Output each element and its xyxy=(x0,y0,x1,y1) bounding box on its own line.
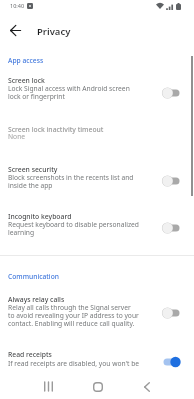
button[interactable] xyxy=(6,21,25,40)
button[interactable]: Always relay calls xyxy=(0,288,194,333)
staticText: 10:40 xyxy=(10,2,25,9)
button[interactable] xyxy=(38,376,59,397)
button[interactable] xyxy=(136,376,157,397)
staticText: If read receipts are disabled, you won't… xyxy=(8,359,140,368)
staticText: Communication xyxy=(8,272,59,281)
button[interactable]: Screen lock inactivity timeout xyxy=(0,118,194,144)
button[interactable]: Incognito keyboard xyxy=(0,205,194,239)
staticText: Relay all calls through the Signal serve… xyxy=(8,303,139,328)
staticText: Read receipts xyxy=(8,350,52,359)
staticText: Privacy xyxy=(37,25,71,38)
button[interactable] xyxy=(87,376,108,397)
staticText: Incognito keyboard xyxy=(8,212,72,221)
button[interactable]: Screen lock xyxy=(0,69,194,103)
staticText: Screen lock inactivity timeout xyxy=(8,125,104,134)
staticText: None xyxy=(8,132,26,141)
staticText: App access xyxy=(8,56,44,65)
button[interactable]: Screen security xyxy=(0,158,194,192)
staticText: Screen lock xyxy=(8,76,45,85)
staticText: Request keyboard to disable personalized… xyxy=(8,220,139,237)
staticText: Always relay calls xyxy=(8,295,65,304)
staticText: Lock Signal access with Android screen l… xyxy=(8,84,130,101)
button[interactable]: Read receipts xyxy=(0,343,194,370)
staticText: Block screenshots in the recents list an… xyxy=(8,173,134,190)
staticText: Screen security xyxy=(8,165,58,174)
